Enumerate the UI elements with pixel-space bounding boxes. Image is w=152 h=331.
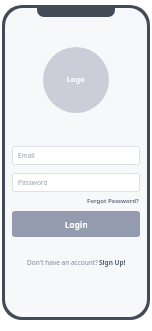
staticText: Login [65, 219, 88, 230]
button[interactable]: Login [12, 211, 140, 237]
staticText: Forgot Password? [87, 197, 139, 205]
button[interactable]: Sign Up! [99, 258, 126, 267]
staticText: Don't have an account? [26, 258, 99, 267]
staticText: Sign Up! [99, 258, 126, 267]
staticText: Password [18, 178, 48, 187]
staticText: Email [18, 151, 35, 160]
button[interactable]: Email [12, 146, 140, 165]
button[interactable]: Password [12, 173, 140, 192]
button[interactable]: Logo [43, 47, 109, 113]
button[interactable]: Forgot Password? [86, 196, 140, 206]
staticText: Logo [67, 75, 85, 85]
